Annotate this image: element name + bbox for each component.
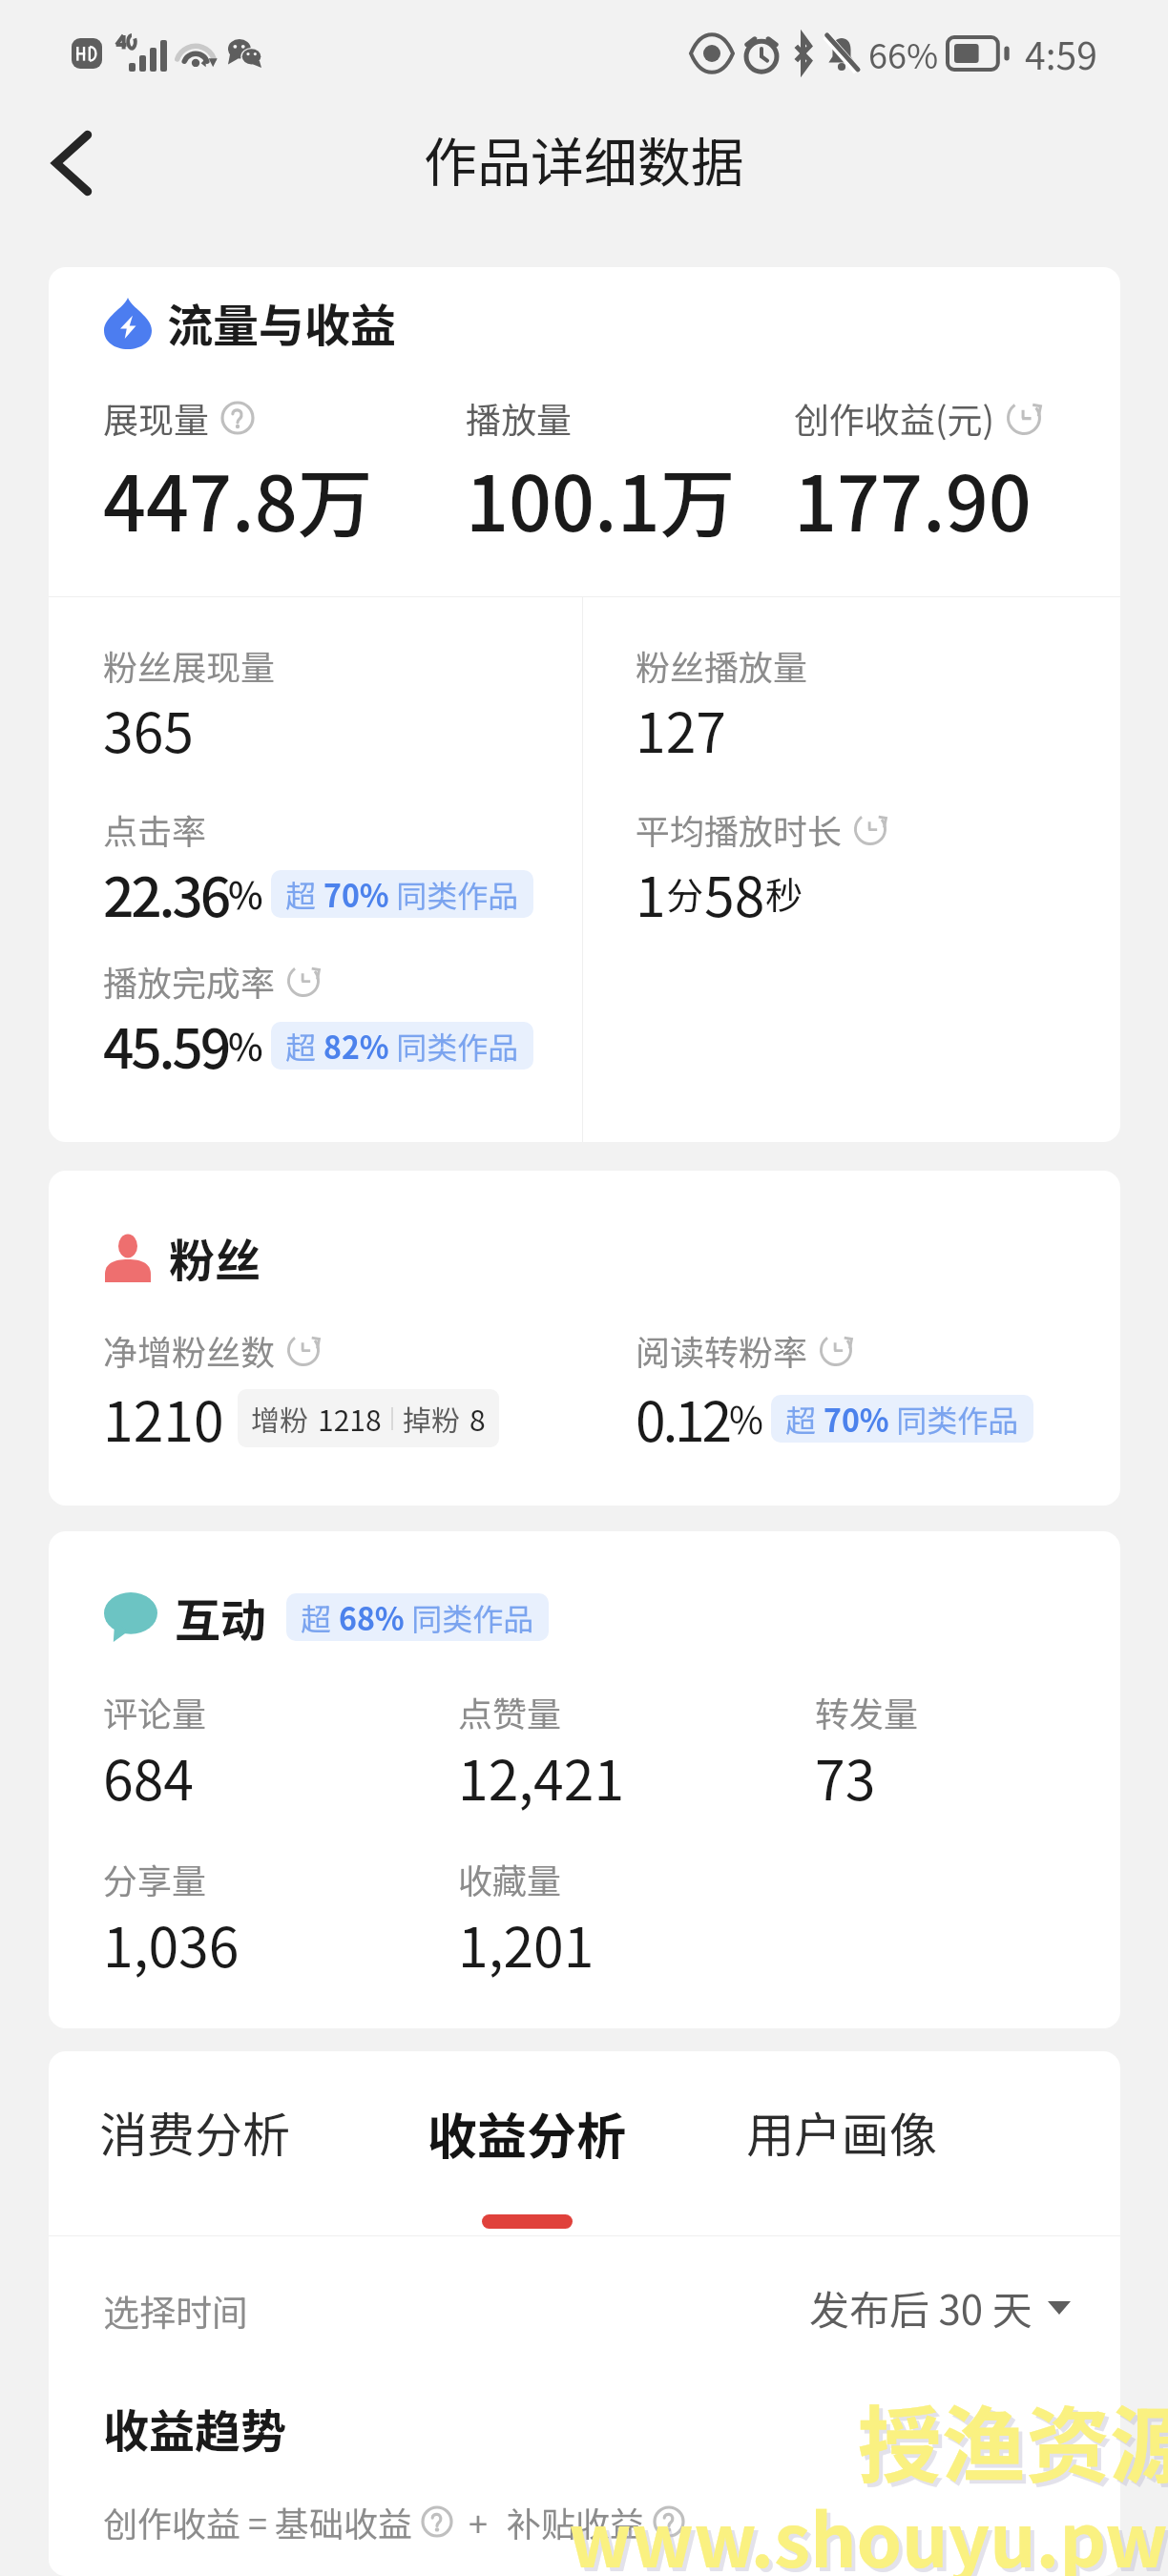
staticText: 70% — [824, 1397, 889, 1441]
staticText: 展现量 — [103, 392, 209, 444]
staticText: 消费分析 — [99, 2097, 290, 2166]
staticText: 点赞量 — [458, 1687, 562, 1736]
staticText: www.shouyu.pw — [569, 2483, 1168, 2576]
staticText: + — [469, 2497, 488, 2546]
staticText: 授渔资源 — [858, 2379, 1168, 2500]
staticText: 68% — [339, 1595, 405, 1639]
staticText: 粉丝播放量 — [636, 640, 808, 690]
button[interactable]: 消费分析 — [99, 2051, 290, 2166]
staticText: 选择时间 — [103, 2284, 249, 2337]
staticText: 发布后 30 天 — [809, 2278, 1032, 2337]
staticText: 1,201 — [458, 1904, 594, 1984]
staticText: 授渔资源 — [862, 2382, 1168, 2503]
staticText: 超 — [785, 1397, 824, 1441]
button[interactable]: Back — [19, 111, 124, 216]
staticText: 127 — [636, 690, 726, 769]
staticText: 收益趋势 — [103, 2395, 287, 2462]
staticText: 净增粉丝数 — [103, 1325, 276, 1375]
staticText: 收益分析 — [428, 2097, 627, 2169]
staticText: 粉丝展现量 — [103, 640, 276, 690]
button[interactable]: 用户画像 — [746, 2051, 937, 2166]
staticText: 447.8万 — [103, 444, 373, 552]
staticText: 12,421 — [458, 1737, 625, 1817]
staticText: % — [729, 1391, 763, 1444]
staticText: 0.12 — [636, 1379, 729, 1458]
staticText: 1218 — [318, 1398, 382, 1439]
staticText: 秒 — [765, 866, 803, 920]
staticText: 684 — [103, 1737, 194, 1817]
staticText: 作品详细数据 — [424, 120, 744, 197]
staticText: 创作收益 = 基础收益 — [103, 2497, 413, 2546]
staticText: 同类作品 — [889, 1397, 1019, 1441]
staticText: % — [228, 866, 263, 920]
staticText: 45.59 — [103, 1006, 228, 1085]
staticText: 1 — [636, 854, 666, 933]
staticText: 分 — [666, 866, 704, 920]
staticText: 粉丝 — [169, 1224, 261, 1291]
staticText: 播放量 — [466, 392, 572, 444]
staticText: 增粉 — [251, 1398, 308, 1439]
button[interactable]: 收益分析 — [428, 2051, 627, 2229]
staticText: 超 — [285, 1024, 323, 1068]
staticText: 阅读转粉率 — [636, 1325, 808, 1375]
staticText: 分享量 — [103, 1854, 207, 1903]
staticText: 创作收益(元) — [794, 392, 995, 444]
staticText: 评论量 — [103, 1687, 207, 1736]
staticText: 播放完成率 — [103, 956, 276, 1006]
staticText: % — [228, 1018, 263, 1071]
staticText: 1,036 — [103, 1904, 240, 1984]
staticText: 58 — [704, 854, 765, 933]
staticText: 4:59 — [1025, 27, 1097, 80]
staticText: 66% — [868, 29, 939, 78]
staticText: 用户画像 — [746, 2097, 937, 2166]
staticText: 补贴收益 — [507, 2497, 645, 2546]
staticText: 177.90 — [794, 444, 1032, 552]
staticText: 超 — [301, 1595, 339, 1639]
staticText: 8 — [469, 1398, 486, 1439]
staticText: 点击率 — [103, 804, 207, 854]
staticText: www.shouyu.pw — [573, 2487, 1168, 2576]
staticText: 掉粉 — [403, 1398, 460, 1439]
staticText: 平均播放时长 — [636, 804, 843, 854]
staticText: 1210 — [103, 1379, 224, 1458]
staticText: 同类作品 — [389, 1024, 519, 1068]
staticText: 82% — [323, 1024, 389, 1068]
staticText: 同类作品 — [389, 872, 519, 916]
staticText: 70% — [323, 872, 389, 916]
staticText: 流量与收益 — [167, 289, 397, 356]
staticText: 超 — [285, 872, 323, 916]
staticText: 365 — [103, 690, 194, 769]
staticText: 73 — [815, 1737, 876, 1817]
staticText: 100.1万 — [466, 444, 736, 552]
staticText: 收藏量 — [458, 1854, 562, 1903]
staticText: 22.36 — [103, 854, 228, 933]
staticText: 互动 — [175, 1584, 267, 1651]
staticText: 同类作品 — [405, 1595, 534, 1639]
staticText: 转发量 — [815, 1687, 919, 1736]
